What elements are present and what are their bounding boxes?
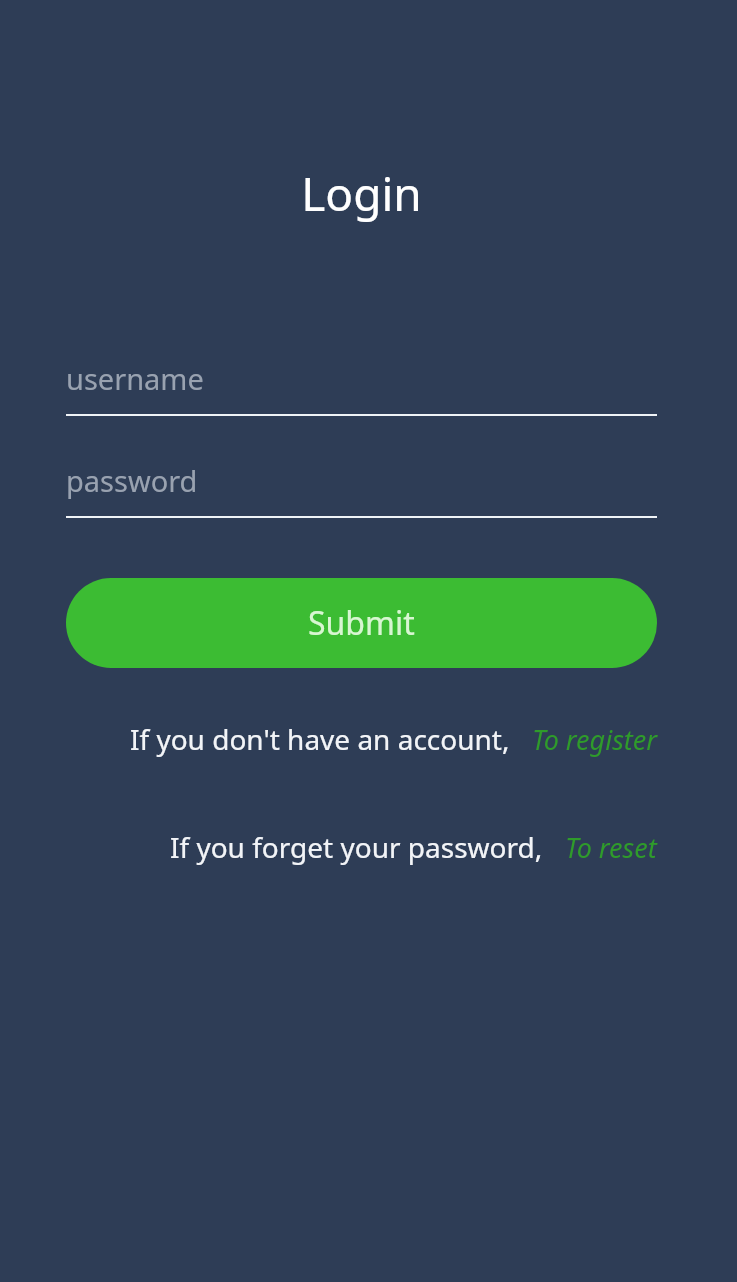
staticText: Login: [301, 162, 422, 225]
button[interactable]: If you don't have an account,: [66, 720, 657, 758]
button[interactable]: password: [66, 444, 657, 518]
staticText: To reset: [565, 829, 657, 866]
staticText: To register: [532, 721, 657, 758]
staticText: If you forget your password,: [170, 828, 543, 866]
button[interactable]: If you forget your password,: [66, 828, 657, 866]
button[interactable]: Submit: [66, 578, 657, 668]
staticText: password: [66, 461, 198, 500]
staticText: If you don't have an account,: [130, 720, 510, 758]
staticText: Submit: [308, 601, 415, 645]
button[interactable]: username: [66, 342, 657, 416]
staticText: username: [66, 359, 204, 398]
